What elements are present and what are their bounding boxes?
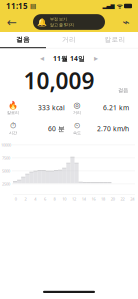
staticText: 칼로리 (104, 35, 125, 44)
staticText: 10 (62, 196, 66, 202)
staticText: 부정 보기 (50, 17, 67, 21)
staticText: ◀ (40, 55, 44, 61)
staticText: 8 (54, 196, 56, 202)
staticText: 14 (82, 196, 86, 202)
staticText: 시간 (9, 130, 17, 135)
staticText: 11:15 (6, 1, 28, 11)
staticText: ⌁ (122, 15, 129, 29)
staticText: 24 (130, 196, 134, 202)
staticText: ᯤ (114, 2, 122, 10)
button[interactable]: Share (116, 13, 136, 31)
button[interactable]: 다음 날짜 (92, 53, 100, 63)
staticText: 16 (91, 196, 95, 202)
staticText: 0 (15, 196, 17, 202)
staticText: 7500 (2, 155, 10, 161)
staticText: ← (7, 15, 17, 29)
staticText: 20 (111, 196, 115, 202)
staticText: 10000 (1, 142, 11, 148)
staticText: 4 (34, 196, 36, 202)
staticText: ⏲ (74, 122, 80, 130)
staticText: ▂▄▆ (102, 3, 114, 9)
staticText: 18 (101, 196, 105, 202)
button[interactable]: 걸음 (0, 32, 46, 47)
staticText: 2.70 km/h (97, 124, 129, 133)
staticText: 22 (120, 196, 124, 202)
staticText: 333 kcal (38, 103, 65, 112)
staticText: ▶ (94, 55, 98, 61)
button[interactable]: Back (2, 13, 22, 31)
staticText: 걸음 (118, 87, 128, 94)
button[interactable]: 칼로리 (92, 32, 138, 47)
staticText: 12 (72, 196, 76, 202)
staticText: 6.21 km (103, 103, 129, 112)
staticText: 10,009 (23, 65, 94, 95)
staticText: 알고 줄 5가지 (50, 22, 74, 27)
staticText: 🔥 (8, 100, 18, 110)
staticText: 칼로리 (7, 110, 19, 115)
staticText: 5000 (2, 168, 10, 174)
staticText: ▤ (28, 2, 36, 10)
staticText: ⏱ (10, 122, 16, 130)
staticText: 걸음 (16, 35, 30, 44)
staticText: 속도 (73, 130, 81, 135)
button[interactable]: 거리 (46, 32, 92, 47)
button[interactable]: 이전 날짜 (38, 53, 46, 63)
staticText: 🔔 (37, 17, 47, 26)
staticText: 2500 (2, 181, 10, 187)
button[interactable]: 알림 (33, 14, 105, 30)
staticText: 11월 14일 (53, 54, 85, 63)
staticText: 6 (44, 196, 46, 202)
staticText: 거리 (73, 110, 81, 115)
staticText: ◎ (73, 100, 80, 110)
staticText: 60 분 (48, 124, 65, 133)
staticText: 거리 (62, 35, 76, 44)
staticText: 2 (24, 196, 26, 202)
